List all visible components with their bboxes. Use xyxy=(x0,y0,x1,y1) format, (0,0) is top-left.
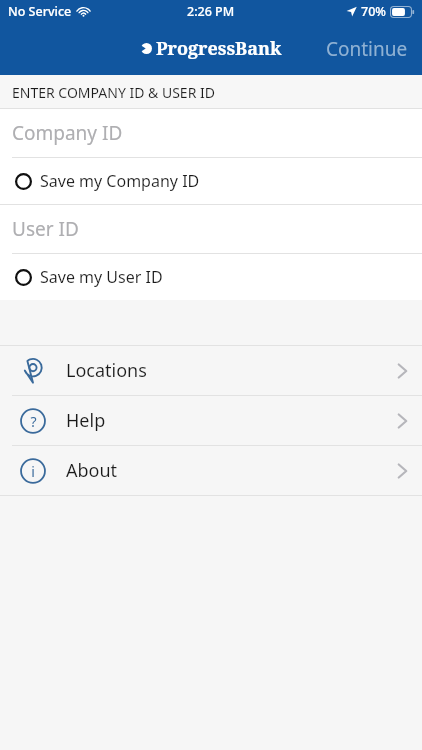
staticText: Save my User ID xyxy=(40,266,163,288)
staticText: Continue xyxy=(326,36,408,62)
staticText: About xyxy=(66,458,118,483)
button[interactable]: Save my User ID xyxy=(0,254,422,300)
button[interactable]: Continue xyxy=(312,22,422,75)
staticText: ? xyxy=(30,412,37,431)
button[interactable]: Company ID xyxy=(0,109,422,157)
staticText: Company ID xyxy=(12,120,123,146)
staticText: User ID xyxy=(12,216,79,242)
staticText: Save my Company ID xyxy=(40,170,200,192)
staticText: Help xyxy=(66,408,106,433)
button[interactable]: Save my Company ID xyxy=(0,158,422,204)
button[interactable]: i xyxy=(0,446,422,495)
staticText: ProgressBank xyxy=(156,36,282,61)
staticText: 2:26 PM xyxy=(187,3,235,20)
staticText: ENTER COMPANY ID & USER ID xyxy=(12,83,215,102)
button[interactable]: Locations xyxy=(0,346,422,395)
button[interactable]: User ID xyxy=(0,205,422,253)
staticText: Locations xyxy=(66,358,147,383)
button[interactable]: ? xyxy=(0,396,422,445)
staticText: No Service xyxy=(8,3,72,20)
staticText: i xyxy=(31,462,35,481)
staticText: 70% xyxy=(361,3,386,20)
